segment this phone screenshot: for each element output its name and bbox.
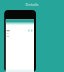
staticText: Details	[0, 2, 64, 8]
button[interactable]	[4, 10, 36, 72]
